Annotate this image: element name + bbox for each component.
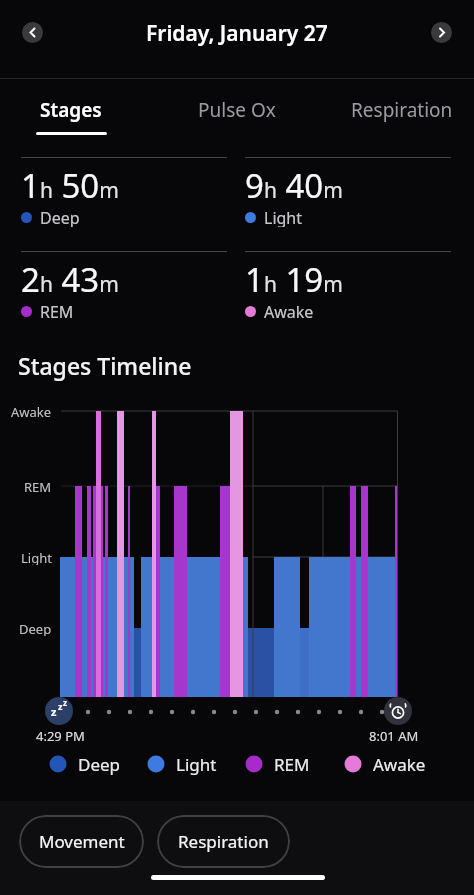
button[interactable]: Stages xyxy=(21,95,121,125)
button[interactable]: Pulse Ox xyxy=(180,95,294,125)
staticText: Movement xyxy=(39,830,125,853)
staticText: 8:01 AM xyxy=(369,727,419,745)
staticText: Light xyxy=(176,753,217,776)
staticText: z xyxy=(51,704,57,719)
staticText: 9h 40m xyxy=(245,163,343,205)
staticText: Awake xyxy=(264,301,314,321)
staticText: Light xyxy=(264,207,303,227)
button[interactable] xyxy=(431,22,452,43)
staticText: Pulse Ox xyxy=(198,97,276,123)
staticText: REM xyxy=(24,478,52,494)
staticText: Awake xyxy=(11,403,52,419)
staticText: Friday, January 27 xyxy=(146,19,328,48)
button[interactable]: Respiration xyxy=(330,95,474,125)
staticText: Respiration xyxy=(178,830,269,853)
button[interactable] xyxy=(22,22,43,43)
staticText: Deep xyxy=(19,620,52,636)
staticText: REM xyxy=(274,753,310,776)
staticText: Stages Timeline xyxy=(18,350,192,381)
staticText: 4:29 PM xyxy=(36,727,85,745)
button[interactable]: Movement xyxy=(19,815,144,868)
staticText: 2h 43m xyxy=(21,257,119,299)
staticText: z xyxy=(58,700,63,712)
staticText: Deep xyxy=(78,753,121,776)
staticText: z xyxy=(63,697,67,708)
staticText: 1h 50m xyxy=(21,163,119,205)
staticText: Deep xyxy=(40,207,80,227)
staticText: 1h 19m xyxy=(245,257,343,299)
staticText: Awake xyxy=(373,753,426,776)
staticText: REM xyxy=(40,301,74,321)
button[interactable]: Respiration xyxy=(157,815,290,868)
staticText: Stages xyxy=(40,97,102,123)
staticText: Respiration xyxy=(351,97,453,123)
staticText: Light xyxy=(21,549,52,565)
